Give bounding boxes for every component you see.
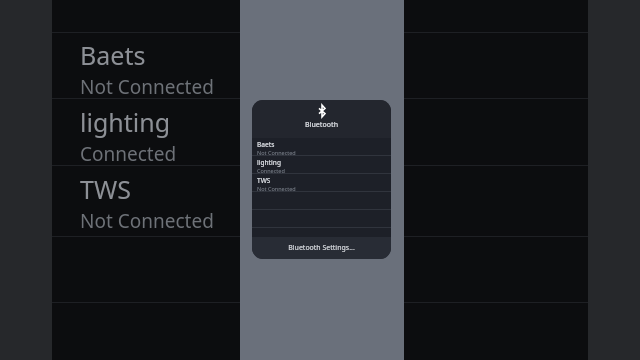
staticText: Bluetooth Settings... <box>288 243 355 253</box>
button[interactable]: TWS <box>80 172 260 234</box>
staticText: Not Connected <box>257 185 296 191</box>
button[interactable]: lighting <box>252 156 391 173</box>
staticText: Connected <box>80 141 177 167</box>
staticText: Baets <box>80 38 146 72</box>
button[interactable]: Bluetooth <box>252 100 391 138</box>
staticText: Bluetooth <box>305 120 339 130</box>
staticText: lighting <box>80 105 171 139</box>
staticText: Not Connected <box>80 74 214 100</box>
button[interactable]: Bluetooth Settings... <box>252 237 391 259</box>
button[interactable]: lighting <box>80 105 260 167</box>
staticText: TWS <box>257 176 271 185</box>
staticText: Baets <box>257 140 275 149</box>
staticText: Not Connected <box>257 149 296 155</box>
staticText: Connected <box>257 167 285 173</box>
staticText: Not Connected <box>80 208 214 234</box>
button[interactable]: Baets <box>252 138 391 155</box>
button[interactable]: Baets <box>80 38 260 100</box>
button[interactable]: TWS <box>252 174 391 191</box>
staticText: lighting <box>257 158 281 167</box>
staticText: TWS <box>80 172 131 206</box>
